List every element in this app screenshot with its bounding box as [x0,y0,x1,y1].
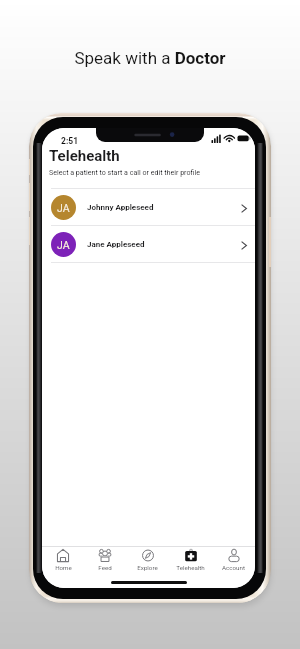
staticText: Telehealth [49,147,120,165]
staticText: Johnny Appleseed [87,203,240,212]
staticText: Jane Appleseed [87,240,240,249]
staticText: JA [57,239,70,251]
button[interactable]: JA [42,226,255,262]
staticText: Home [55,564,72,571]
staticText: Account [222,564,245,571]
button[interactable]: Telehealth [169,549,212,571]
button[interactable]: JA [42,189,255,225]
button[interactable]: Account [212,549,255,571]
staticText: Explore [137,564,158,571]
button[interactable]: Feed [84,549,126,571]
staticText: Telehealth [176,564,205,571]
button[interactable]: Explore [126,549,169,571]
staticText: Select a patient to start a call or edit… [49,168,200,176]
staticText: 2:51 [61,136,79,146]
staticText: Speak with a Doctor [0,48,300,68]
staticText: Feed [98,564,112,571]
staticText: JA [57,202,70,214]
button[interactable]: Home [42,549,84,571]
